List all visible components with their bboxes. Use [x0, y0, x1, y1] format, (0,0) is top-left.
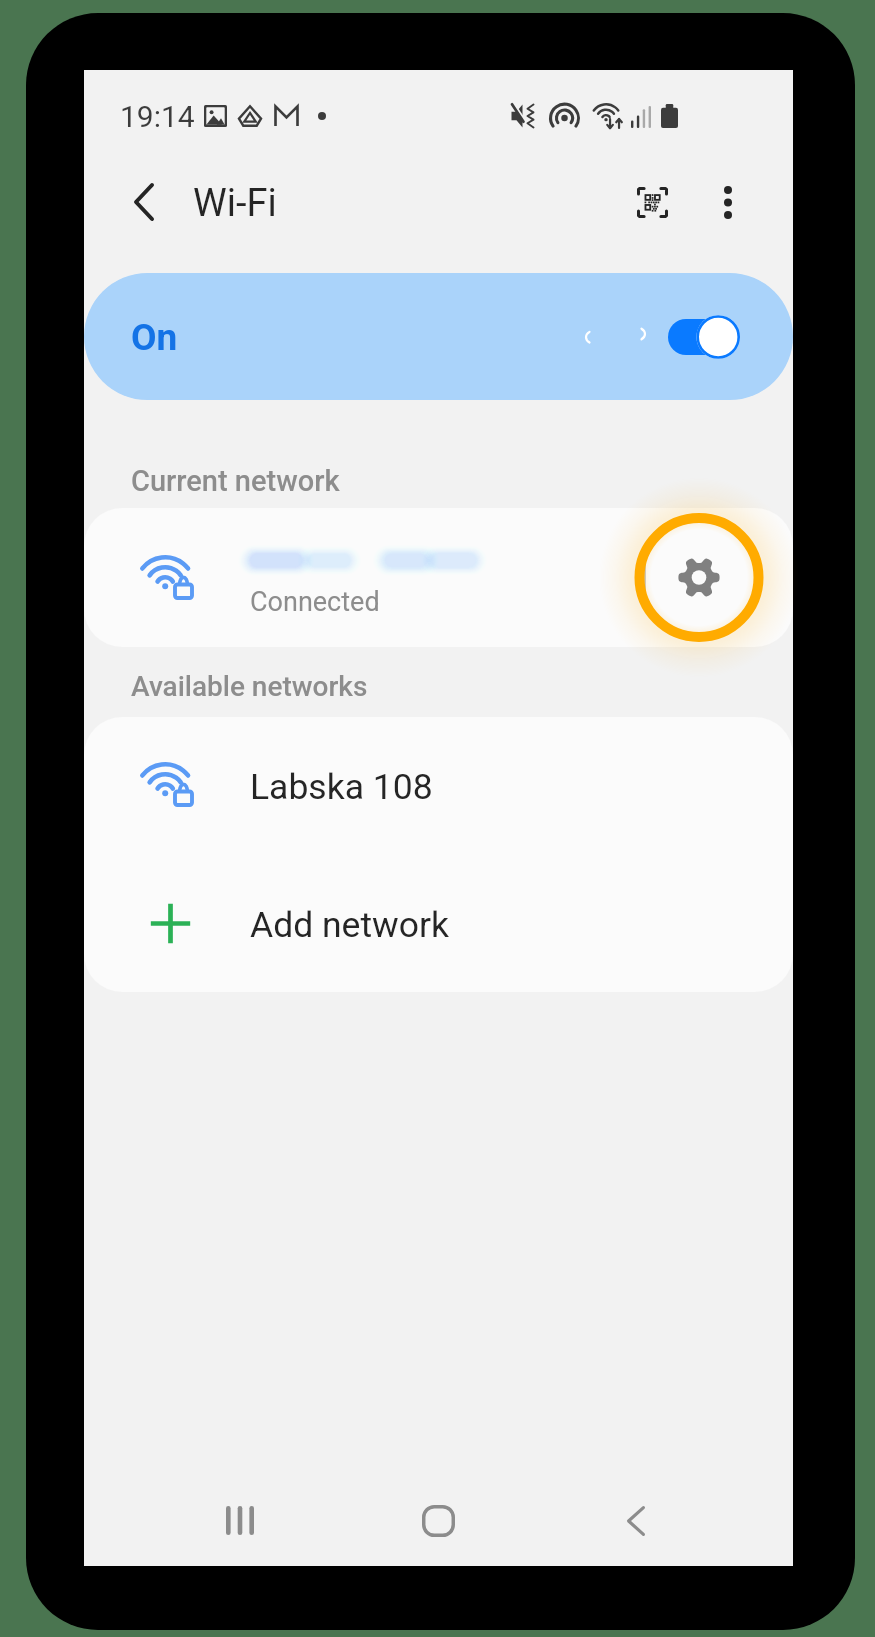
staticText: Connected	[250, 586, 380, 618]
button[interactable]: Connected	[84, 508, 793, 647]
button[interactable]: Back	[587, 1474, 685, 1567]
staticText: Add network	[250, 904, 449, 946]
staticText: Wi-Fi	[193, 181, 277, 226]
button[interactable]: More options	[692, 166, 764, 238]
staticText: On	[131, 316, 178, 359]
button[interactable]: Network settings	[604, 508, 794, 647]
button[interactable]: Scan QR code	[616, 166, 688, 238]
staticText: 19:14	[120, 99, 195, 134]
button[interactable]: Home	[389, 1474, 487, 1567]
button[interactable]: Recent apps	[191, 1474, 289, 1567]
button[interactable]: Labska 108	[84, 717, 793, 854]
button[interactable]: Add network	[84, 854, 793, 992]
button[interactable]: On	[84, 273, 793, 400]
button[interactable]: Navigate up	[106, 164, 182, 240]
staticText: Available networks	[131, 670, 368, 703]
staticText: Labska 108	[250, 766, 433, 808]
staticText: Current network	[131, 464, 340, 498]
